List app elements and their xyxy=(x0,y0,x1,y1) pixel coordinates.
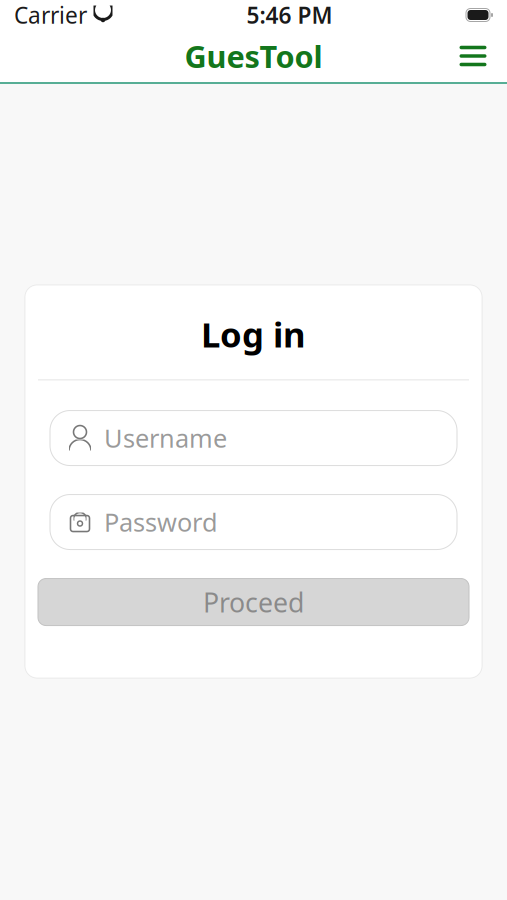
button[interactable]: Menu xyxy=(449,34,497,78)
button[interactable]: Password xyxy=(50,494,457,549)
staticText: Log in xyxy=(201,311,306,357)
button[interactable]: Proceed xyxy=(38,578,469,625)
staticText: Carrier xyxy=(14,0,87,30)
staticText: Username xyxy=(104,421,227,455)
button[interactable]: Username xyxy=(50,410,457,465)
staticText: 5:46 PM xyxy=(246,0,332,30)
staticText: Password xyxy=(104,505,218,539)
staticText: Proceed xyxy=(203,584,304,620)
staticText: GuesTool xyxy=(184,36,322,76)
